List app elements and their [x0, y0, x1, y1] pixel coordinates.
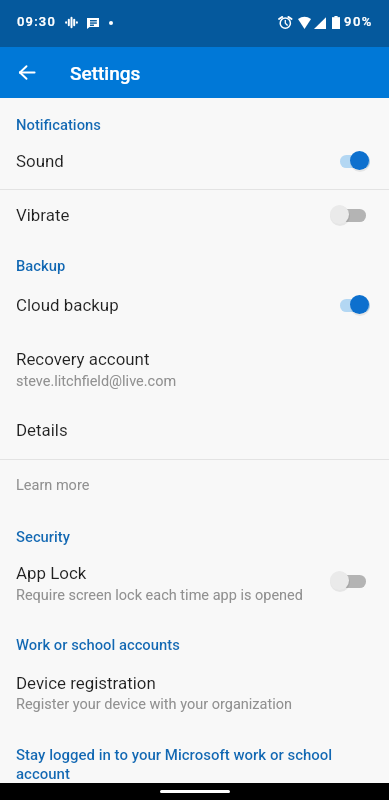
staticText: Details: [16, 420, 68, 440]
button[interactable]: App Lock: [0, 548, 389, 612]
button[interactable]: Sound: [0, 134, 389, 188]
staticText: Cloud backup: [16, 295, 119, 315]
staticText: Device registration: [16, 673, 156, 693]
staticText: Recovery account: [16, 349, 150, 369]
button[interactable]: Details: [0, 400, 389, 447]
button[interactable]: Recovery account: [0, 334, 389, 398]
button[interactable]: Device registration: [0, 658, 389, 721]
button[interactable]: Learn more: [0, 460, 389, 507]
staticText: Vibrate: [16, 205, 70, 225]
staticText: steve.litchfield@live.com: [16, 373, 177, 390]
staticText: Security: [16, 528, 71, 545]
staticText: 09:30: [17, 14, 56, 29]
staticText: Register your device with your organizat…: [16, 696, 292, 713]
staticText: Backup: [16, 257, 66, 274]
staticText: Require screen lock each time app is ope…: [16, 587, 303, 604]
staticText: Sound: [16, 151, 64, 171]
staticText: Work or school accounts: [16, 636, 180, 653]
staticText: Notifications: [16, 116, 101, 133]
button[interactable]: Vibrate: [0, 190, 389, 241]
button[interactable]: Stay logged in to your Microsoft work or…: [0, 731, 389, 783]
staticText: Settings: [70, 62, 141, 84]
staticText: 90%: [344, 14, 373, 29]
staticText: App Lock: [16, 563, 87, 583]
button[interactable]: Navigate up: [6, 51, 48, 93]
button[interactable]: Cloud backup: [0, 278, 389, 331]
staticText: Stay logged in to your Microsoft work or…: [16, 746, 373, 783]
staticText: Learn more: [16, 477, 90, 494]
